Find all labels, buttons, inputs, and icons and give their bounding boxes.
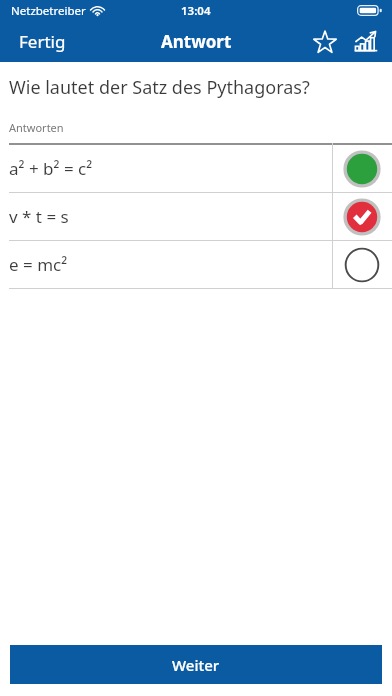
staticText: Wie lautet der Satz des Pythagoras?	[9, 75, 310, 100]
button[interactable]: e = mc²	[0, 241, 392, 288]
staticText: Weiter	[172, 655, 220, 675]
staticText: 13:04	[181, 3, 211, 19]
button[interactable]: Favorit	[308, 25, 342, 59]
button[interactable]: Fertig	[0, 21, 85, 62]
button[interactable]: Statistik	[349, 25, 383, 59]
staticText: a² + b² = c²	[9, 157, 332, 180]
button[interactable]: v * t = s	[0, 193, 392, 240]
staticText: e = mc²	[9, 253, 332, 276]
button[interactable]: a² + b² = c²	[0, 145, 392, 192]
staticText: Fertig	[19, 30, 66, 53]
staticText: Antworten	[9, 120, 64, 135]
staticText: v * t = s	[9, 205, 332, 228]
staticText: Netzbetreiber	[11, 3, 86, 19]
staticText: Antwort	[161, 30, 232, 53]
button[interactable]: Weiter	[10, 645, 382, 684]
